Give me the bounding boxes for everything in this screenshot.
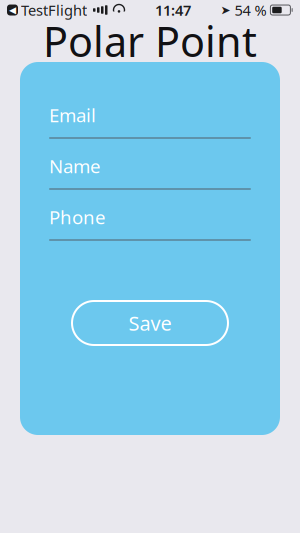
staticText: Name [49,154,101,178]
button[interactable]: Name [49,155,251,190]
staticText: TestFlight [21,0,87,20]
button[interactable]: Save [72,301,228,345]
staticText: Phone [49,205,106,229]
button[interactable]: Email [49,104,251,139]
staticText: ◀ [9,5,16,15]
staticText: Save [128,310,171,336]
button[interactable]: Phone [49,206,251,241]
staticText: 11:47 [155,0,191,20]
staticText: Email [49,103,96,127]
staticText: ➤ [220,3,230,17]
staticText: Polar Point [43,14,257,68]
staticText: 54 % [234,0,266,20]
